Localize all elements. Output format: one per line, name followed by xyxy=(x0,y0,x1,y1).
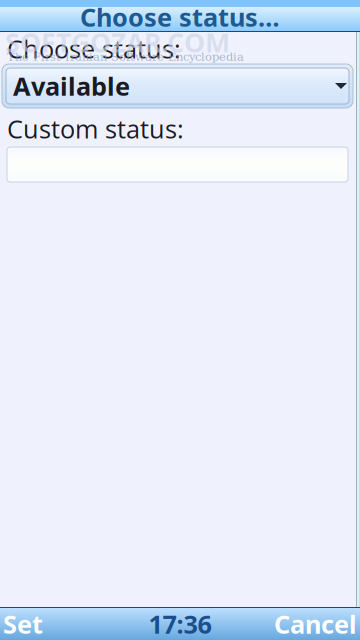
staticText: Custom status: xyxy=(7,111,184,146)
staticText: The First Iranian Software Encyclopedia xyxy=(7,50,244,63)
staticText: 17:36 xyxy=(148,607,211,640)
staticText: SOFTGOZAR.COM xyxy=(5,24,230,60)
staticText: Available xyxy=(13,69,130,103)
button[interactable] xyxy=(0,147,348,182)
staticText: Choose status: xyxy=(7,31,181,66)
staticText: Set xyxy=(3,607,43,640)
staticText: Choose status… xyxy=(80,0,280,34)
button[interactable]: Set xyxy=(0,607,43,640)
staticText: Cancel xyxy=(274,607,357,640)
button[interactable]: Available xyxy=(0,64,353,108)
button[interactable]: Cancel xyxy=(274,607,360,640)
